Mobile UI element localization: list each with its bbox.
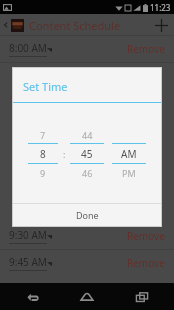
staticText: 7 xyxy=(40,129,46,141)
button[interactable]: 7 xyxy=(28,126,58,181)
staticText: 8:00 AM xyxy=(9,41,47,55)
button[interactable]: Done xyxy=(13,204,161,226)
button[interactable]: 44 xyxy=(70,126,104,181)
staticText: 46 xyxy=(82,167,93,179)
staticText: 44 xyxy=(82,129,93,141)
staticText: Set Time xyxy=(23,79,68,94)
staticText: Remove xyxy=(127,42,165,56)
staticText: 11:23 xyxy=(150,2,171,13)
button[interactable]: 9:45 AM xyxy=(0,250,174,276)
button[interactable]: Recent apps xyxy=(120,283,164,310)
button[interactable]: Home xyxy=(65,283,109,310)
staticText: 9 xyxy=(40,167,46,179)
button[interactable]: 9:30 AM xyxy=(0,223,174,249)
staticText: Remove xyxy=(127,256,165,270)
button[interactable]: Navigate up xyxy=(1,14,11,36)
staticText: 9:30 AM xyxy=(9,228,47,242)
staticText: Content Schedule xyxy=(29,18,121,33)
staticText: 45 xyxy=(81,147,93,161)
button[interactable]: AM xyxy=(112,126,146,181)
button[interactable]: Back xyxy=(11,283,55,310)
button[interactable]: 8:00 AM xyxy=(0,36,174,62)
staticText: 8 xyxy=(40,147,46,161)
staticText: 9:45 AM xyxy=(9,255,47,269)
staticText: Done xyxy=(76,209,99,221)
staticText: : xyxy=(63,148,66,160)
staticText: AM xyxy=(121,147,137,161)
staticText: Remove xyxy=(127,229,165,243)
staticText: PM xyxy=(122,167,136,179)
button[interactable]: Add xyxy=(150,14,172,36)
